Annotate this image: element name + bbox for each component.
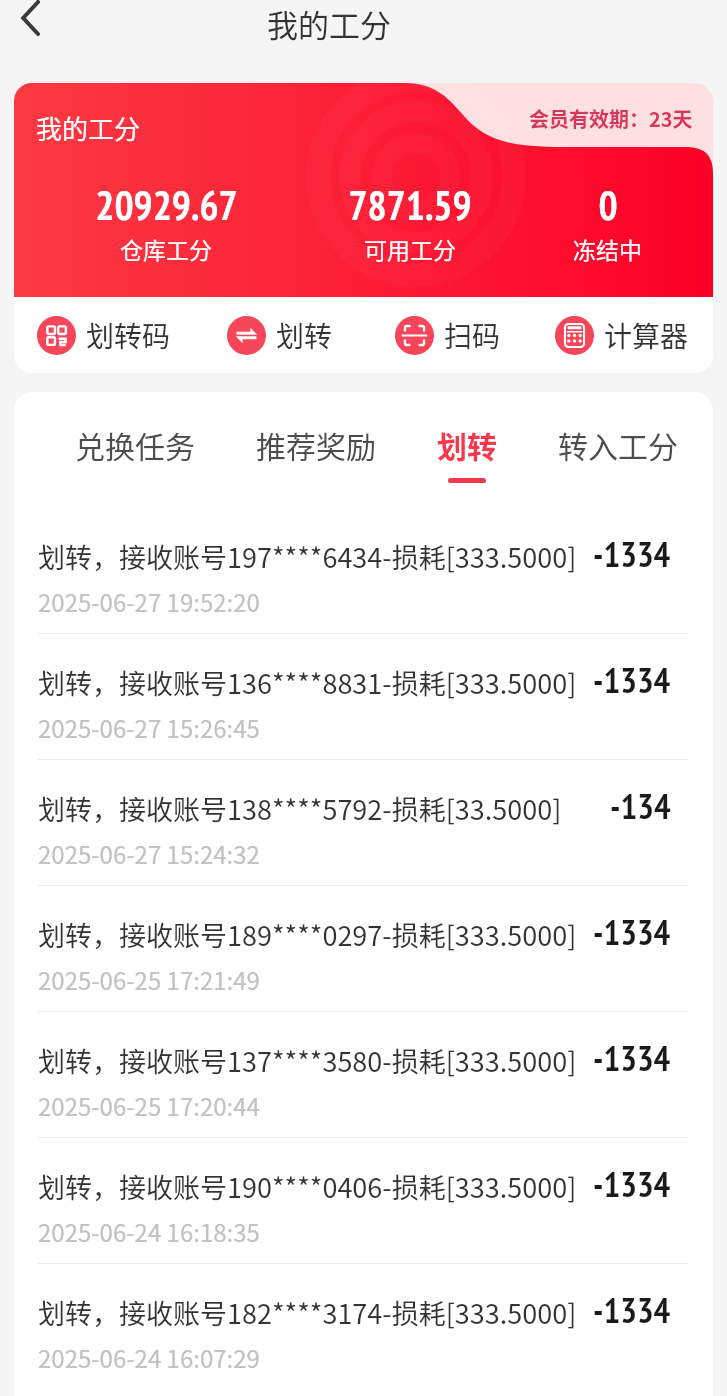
button[interactable]: 划转，接收账号197****6434-损耗[333.5000] — [14, 508, 713, 633]
staticText: -1334 — [593, 531, 671, 576]
staticText: -1334 — [593, 1287, 671, 1332]
staticText: 2025-06-24 16:07:29 — [38, 1340, 260, 1375]
staticText: 2025-06-27 19:52:20 — [38, 584, 260, 619]
staticText: 划转 — [276, 315, 333, 356]
staticText: -134 — [610, 783, 671, 828]
staticText: 0 — [598, 179, 618, 231]
button[interactable]: 划转，接收账号182****3174-损耗[333.5000] — [14, 1263, 713, 1389]
button[interactable]: 划转，接收账号137****3580-损耗[333.5000] — [14, 1011, 713, 1137]
staticText: 划转，接收账号137****3580-损耗[333.5000] — [38, 1041, 577, 1080]
button[interactable]: 计算器 — [555, 315, 689, 356]
staticText: 2025-06-25 17:21:49 — [38, 962, 260, 997]
staticText: 会员有效期：23天 — [529, 104, 693, 133]
staticText: 可用工分 — [364, 232, 456, 265]
staticText: 划转，接收账号190****0406-损耗[333.5000] — [38, 1167, 577, 1206]
button[interactable]: 划转，接收账号189****0297-损耗[333.5000] — [14, 885, 713, 1011]
staticText: 7871.59 — [348, 179, 472, 231]
staticText: 扫码 — [444, 315, 501, 356]
button[interactable]: 划转，接收账号138****5792-损耗[33.5000] — [14, 759, 713, 885]
staticText: 20929.67 — [95, 179, 238, 231]
button[interactable]: 划转，接收账号190****0406-损耗[333.5000] — [14, 1137, 713, 1263]
staticText: 2025-06-27 15:26:45 — [38, 710, 260, 745]
button[interactable]: 扫码 — [395, 315, 555, 356]
staticText: 划转码 — [86, 315, 171, 356]
button[interactable]: 划转 — [227, 315, 395, 356]
staticText: 2025-06-24 16:18:35 — [38, 1214, 260, 1249]
staticText: 仓库工分 — [120, 232, 212, 265]
staticText: 划转，接收账号182****3174-损耗[333.5000] — [38, 1293, 577, 1332]
button[interactable]: 划转码 — [37, 315, 227, 356]
staticText: 2025-06-27 15:24:32 — [38, 836, 260, 871]
staticText: 划转，接收账号197****6434-损耗[333.5000] — [38, 537, 577, 576]
staticText: 划转 — [437, 423, 497, 466]
staticText: -1334 — [593, 1035, 671, 1080]
staticText: -1334 — [593, 1161, 671, 1206]
button[interactable]: Back — [3, 0, 57, 45]
button[interactable]: 推荐奖励 — [256, 392, 376, 483]
staticText: -1334 — [593, 909, 671, 954]
staticText: 推荐奖励 — [256, 423, 376, 466]
staticText: 划转，接收账号136****8831-损耗[333.5000] — [38, 663, 577, 702]
button[interactable]: 划转 — [437, 392, 497, 483]
button[interactable]: 转入工分 — [558, 392, 678, 483]
staticText: 我的工分 — [36, 109, 141, 147]
staticText: 2025-06-25 17:20:44 — [38, 1088, 260, 1123]
staticText: 划转，接收账号189****0297-损耗[333.5000] — [38, 915, 577, 954]
staticText: 兑换任务 — [75, 423, 195, 466]
staticText: 我的工分 — [267, 1, 391, 46]
staticText: 转入工分 — [558, 423, 678, 466]
staticText: 计算器 — [604, 315, 689, 356]
staticText: 划转，接收账号138****5792-损耗[33.5000] — [38, 789, 562, 828]
staticText: -1334 — [593, 657, 671, 702]
staticText: 冻结中 — [573, 232, 642, 265]
button[interactable]: 兑换任务 — [75, 392, 195, 483]
button[interactable]: 划转，接收账号136****8831-损耗[333.5000] — [14, 633, 713, 759]
